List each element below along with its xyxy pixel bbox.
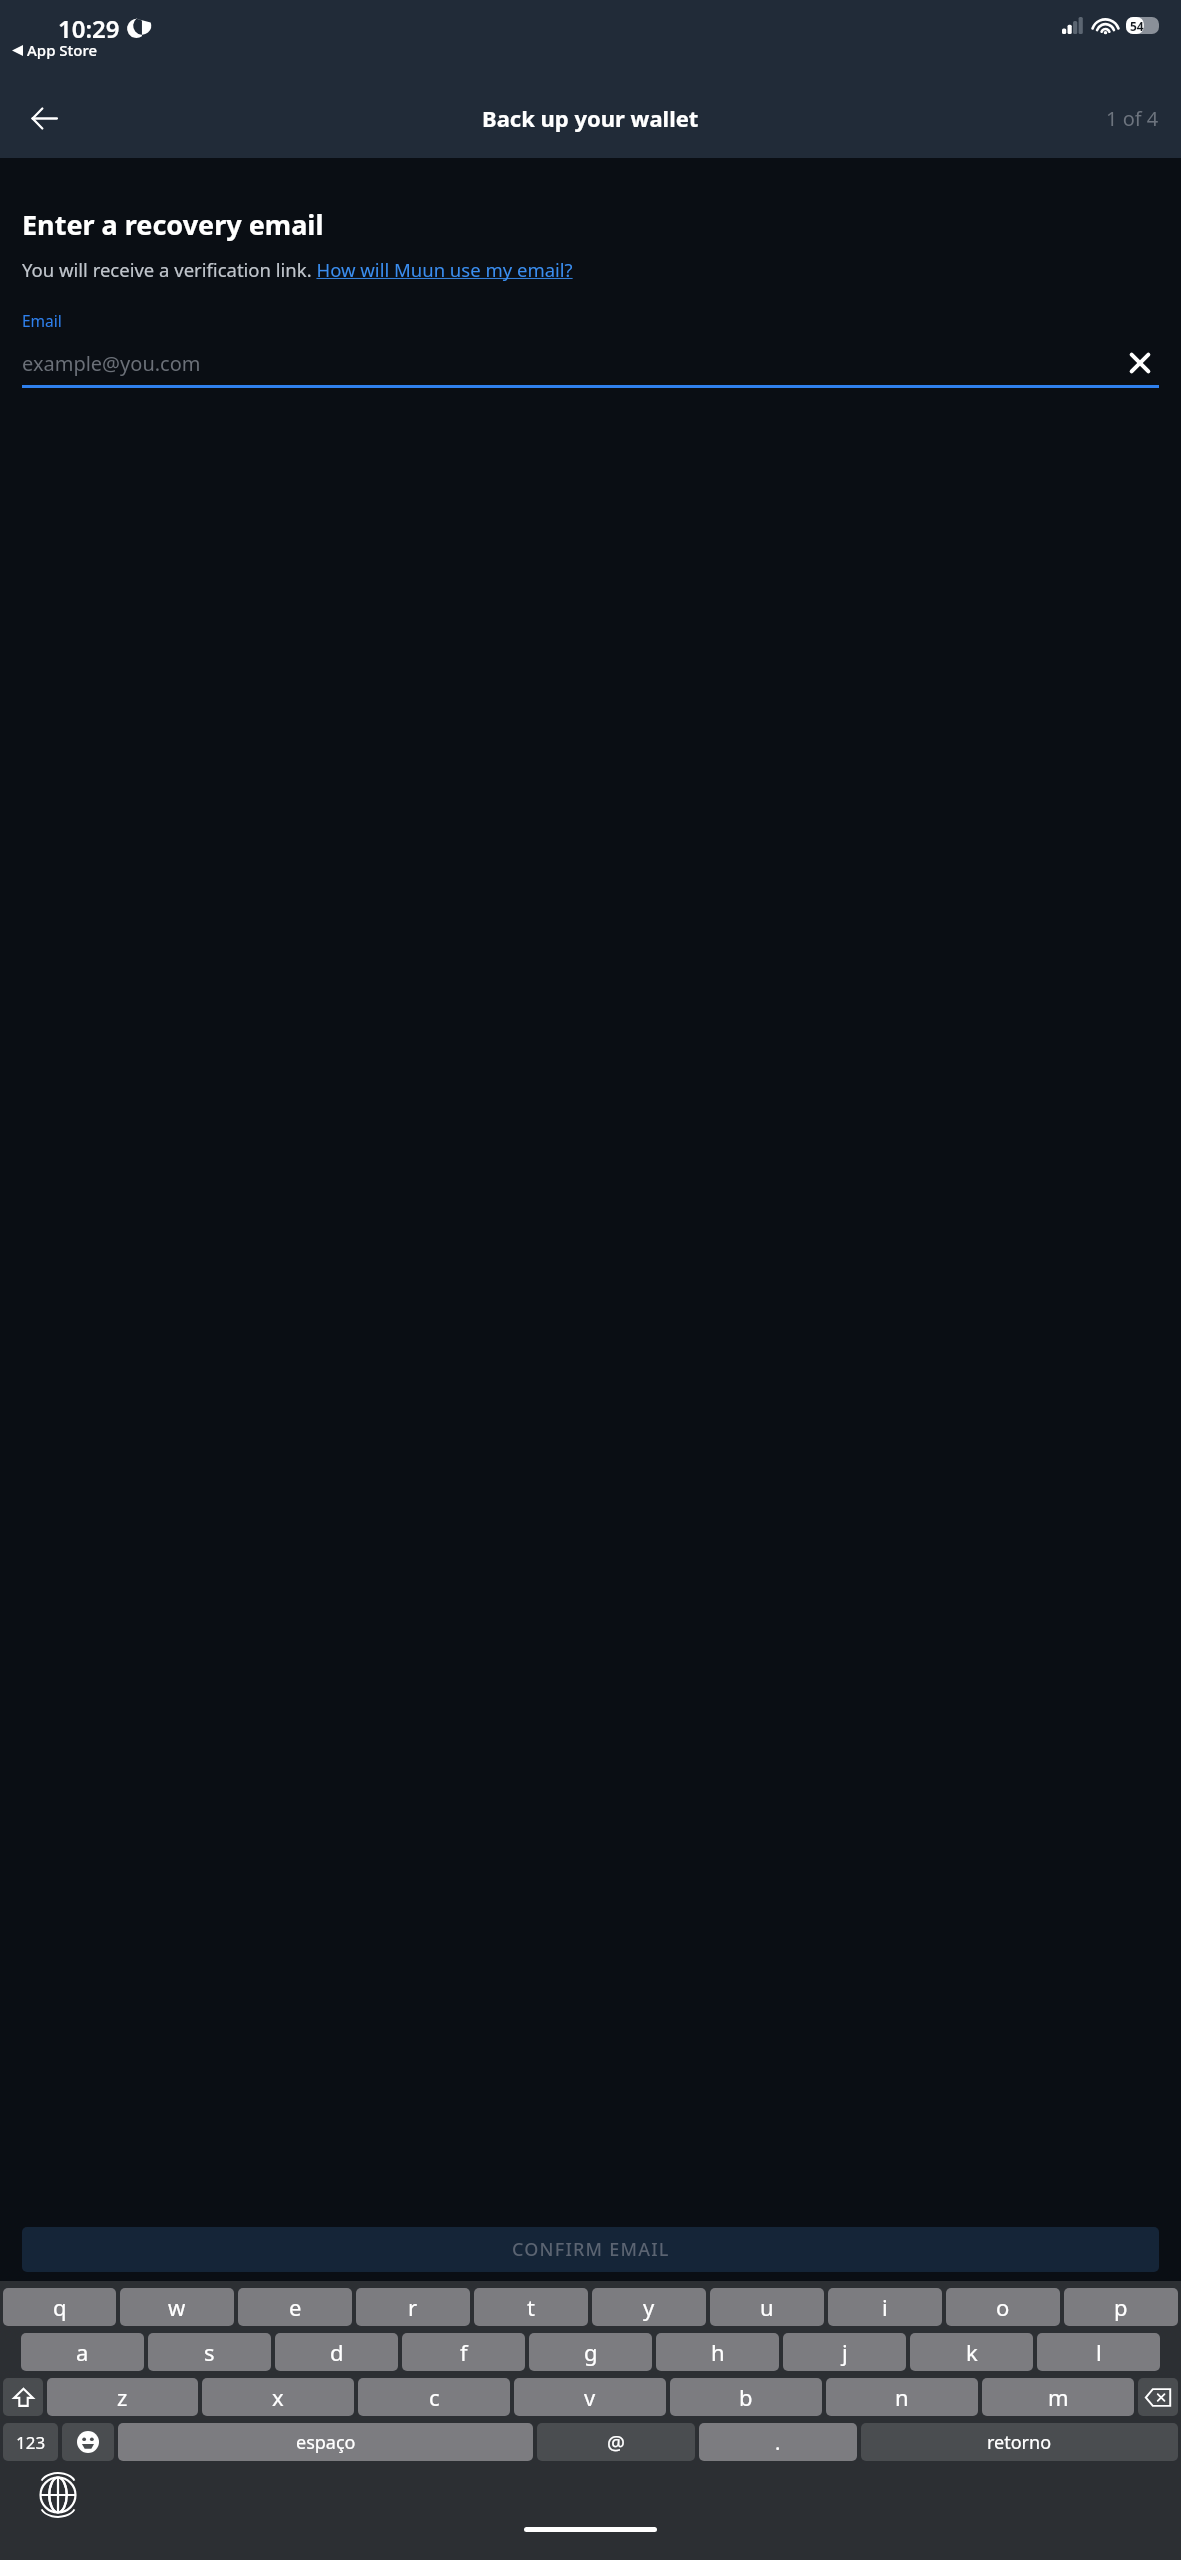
button[interactable]: i <box>828 2288 942 2326</box>
staticText: e <box>289 2292 302 2322</box>
staticText: 1 of 4 <box>1106 105 1159 132</box>
button[interactable]: h <box>656 2333 779 2371</box>
staticText: App Store <box>27 40 98 60</box>
staticText: c <box>429 2382 440 2412</box>
button[interactable]: Clear <box>1121 344 1159 382</box>
staticText: Email <box>22 310 62 331</box>
staticText: espaço <box>296 2430 356 2455</box>
button[interactable]: example@you.com <box>22 341 1159 385</box>
staticText: Back up your wallet <box>482 103 699 133</box>
staticText: @ <box>607 2429 625 2456</box>
button[interactable]: c <box>358 2378 510 2416</box>
button[interactable]: r <box>356 2288 470 2326</box>
button[interactable]: y <box>592 2288 706 2326</box>
button[interactable]: q <box>3 2288 116 2326</box>
button[interactable]: w <box>120 2288 234 2326</box>
button[interactable]: v <box>514 2378 666 2416</box>
button[interactable]: retorno <box>861 2423 1178 2461</box>
staticText: s <box>204 2337 215 2367</box>
staticText: . <box>775 2429 781 2456</box>
staticText: y <box>643 2292 655 2322</box>
staticText: b <box>739 2382 753 2412</box>
button[interactable]: CONFIRM EMAIL <box>22 2227 1159 2272</box>
staticText: g <box>584 2337 598 2367</box>
staticText: i <box>882 2292 888 2322</box>
button[interactable]: b <box>670 2378 822 2416</box>
staticText: u <box>760 2292 774 2322</box>
staticText: q <box>53 2292 67 2322</box>
staticText: o <box>996 2292 1010 2322</box>
staticText: 123 <box>16 2431 46 2454</box>
staticText: a <box>76 2337 89 2367</box>
button[interactable]: m <box>982 2378 1134 2416</box>
button[interactable]: k <box>910 2333 1033 2371</box>
staticText: f <box>460 2337 468 2367</box>
staticText: 54 <box>1130 18 1144 34</box>
staticText: k <box>966 2337 978 2367</box>
staticText: CONFIRM EMAIL <box>512 2237 670 2262</box>
staticText: x <box>272 2382 284 2412</box>
button[interactable]: p <box>1064 2288 1178 2326</box>
button[interactable]: j <box>783 2333 906 2371</box>
staticText: n <box>895 2382 909 2412</box>
staticText: example@you.com <box>22 350 1121 377</box>
button[interactable]: espaço <box>118 2423 533 2461</box>
staticText: p <box>1114 2292 1128 2322</box>
button[interactable]: Emoji <box>62 2423 114 2461</box>
button[interactable]: g <box>529 2333 652 2371</box>
staticText: w <box>168 2292 186 2322</box>
staticText: j <box>842 2337 848 2367</box>
button[interactable]: You will receive a verification link. Ho… <box>22 257 573 282</box>
staticText: retorno <box>987 2430 1052 2455</box>
button[interactable]: . <box>699 2423 857 2461</box>
button[interactable]: t <box>474 2288 588 2326</box>
button[interactable]: n <box>826 2378 978 2416</box>
staticText: z <box>117 2382 128 2412</box>
button[interactable]: l <box>1037 2333 1160 2371</box>
button[interactable]: 123 <box>3 2423 58 2461</box>
button[interactable]: s <box>148 2333 271 2371</box>
staticText: h <box>711 2337 725 2367</box>
button[interactable]: @ <box>537 2423 695 2461</box>
button[interactable]: Shift <box>3 2378 43 2416</box>
button[interactable]: Back <box>18 92 70 144</box>
staticText: Enter a recovery email <box>22 206 324 243</box>
staticText: v <box>584 2382 596 2412</box>
button[interactable]: u <box>710 2288 824 2326</box>
button[interactable]: Backspace <box>1138 2378 1178 2416</box>
button[interactable]: f <box>402 2333 525 2371</box>
button[interactable]: e <box>238 2288 352 2326</box>
staticText: m <box>1048 2382 1069 2412</box>
button[interactable]: a <box>21 2333 144 2371</box>
button[interactable]: x <box>202 2378 354 2416</box>
staticText: t <box>527 2292 535 2322</box>
button[interactable]: z <box>47 2378 198 2416</box>
staticText: l <box>1096 2337 1102 2367</box>
button[interactable]: d <box>275 2333 398 2371</box>
staticText: r <box>408 2292 418 2322</box>
staticText: 10:29 <box>58 12 120 45</box>
button[interactable]: Change keyboard language <box>36 2473 80 2517</box>
button[interactable]: o <box>946 2288 1060 2326</box>
staticText: d <box>330 2337 344 2367</box>
